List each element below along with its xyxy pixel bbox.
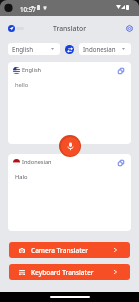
- button[interactable]: Swap languages: [65, 45, 74, 54]
- button[interactable]: Copy: [117, 67, 124, 74]
- button[interactable]: Settings: [125, 24, 134, 33]
- button[interactable]: Back: [8, 25, 15, 32]
- staticText: hello: [15, 81, 29, 89]
- staticText: Halo: [15, 173, 28, 181]
- staticText: English: [22, 66, 42, 74]
- staticText: Indonesian: [22, 158, 52, 166]
- staticText: English: [12, 45, 34, 53]
- staticText: Camera Translater: [31, 246, 89, 255]
- button[interactable]: Keyboard Translater: [9, 264, 130, 280]
- staticText: 10:57: [20, 5, 36, 13]
- button[interactable]: Speak: [59, 135, 81, 157]
- staticText: Keyboard Translater: [31, 268, 94, 277]
- button[interactable]: Indonesian: [8, 154, 131, 231]
- staticText: Indonesian: [83, 45, 116, 53]
- staticText: Translator: [53, 24, 87, 33]
- button[interactable]: Indonesian: [79, 43, 131, 55]
- button[interactable]: Copy: [117, 159, 124, 166]
- button[interactable]: Camera Translater: [9, 242, 130, 258]
- button[interactable]: English: [8, 43, 60, 55]
- button[interactable]: English: [8, 62, 131, 144]
